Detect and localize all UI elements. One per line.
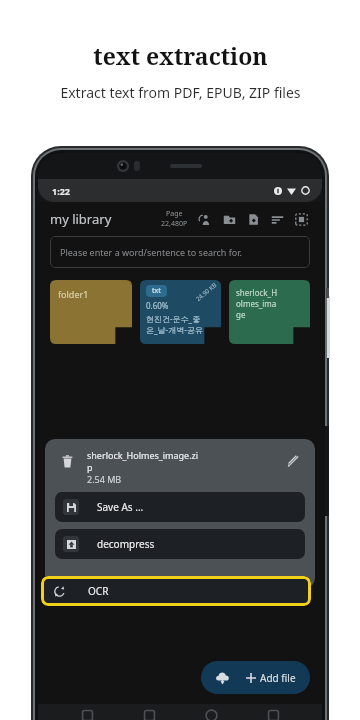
staticText: 현진건-운수_좋 은_날-개벽-공유 <box>146 313 203 335</box>
staticText: decompress <box>97 537 155 551</box>
button[interactable]: OCR <box>41 576 311 606</box>
button[interactable]: sherlock_H olmes_ima ge <box>229 280 310 344</box>
button[interactable]: Sort <box>268 210 286 228</box>
button[interactable]: folder1 <box>50 280 132 344</box>
button[interactable]: Tab 1 <box>74 704 100 720</box>
button[interactable]: Tab 4 <box>260 704 286 720</box>
staticText: folder1 <box>58 288 89 300</box>
staticText: 0.60% <box>146 300 169 311</box>
staticText: 22,480P <box>161 219 188 229</box>
staticText: sherlock_Holmes_image.zi p <box>87 449 199 473</box>
staticText: Extract text from PDF, EPUB, ZIP files <box>60 83 301 102</box>
button[interactable]: New file <box>244 210 262 228</box>
button[interactable]: Select <box>292 210 310 228</box>
staticText: sherlock_H olmes_ima ge <box>236 287 278 320</box>
button[interactable]: decompress <box>55 529 305 559</box>
staticText: 24.90 KB <box>194 281 219 303</box>
staticText: Save As ... <box>97 500 144 514</box>
button[interactable]: Save As ... <box>55 492 305 522</box>
button[interactable]: Add file <box>201 661 310 694</box>
staticText: Please enter a word/sentence to search f… <box>60 246 242 258</box>
button[interactable]: Tab 3 <box>198 704 224 720</box>
staticText: Page <box>166 209 183 219</box>
button[interactable]: Please enter a word/sentence to search f… <box>50 236 310 268</box>
staticText: Add file <box>260 671 296 685</box>
button[interactable]: txt <box>140 280 221 344</box>
staticText: txt <box>152 286 161 296</box>
staticText: 1:22 <box>52 185 70 197</box>
button[interactable]: Rename <box>281 449 305 473</box>
button[interactable]: Delete <box>55 449 79 473</box>
button[interactable]: Shared <box>196 210 214 228</box>
button[interactable]: Tab 2 <box>136 704 162 720</box>
staticText: text extraction <box>93 40 268 71</box>
button[interactable]: New folder <box>220 210 238 228</box>
staticText: 2.54 MB <box>87 473 122 485</box>
staticText: my library <box>50 210 112 228</box>
staticText: OCR <box>88 584 109 598</box>
